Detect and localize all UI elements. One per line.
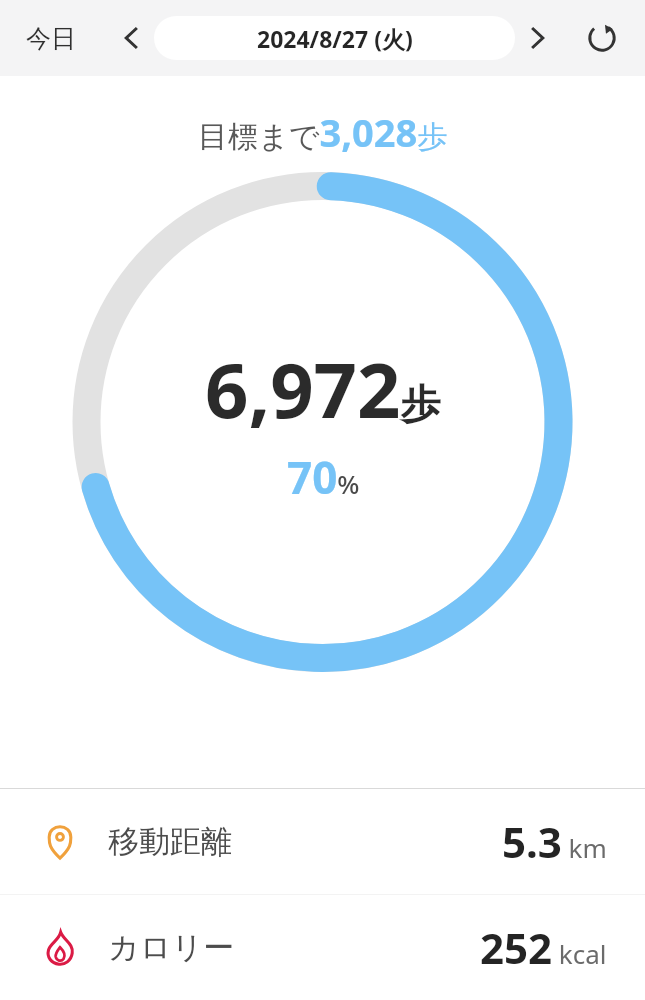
staticText: 目標まで3,028歩 bbox=[198, 106, 448, 158]
button[interactable]: 2024/8/27 (火) bbox=[154, 16, 515, 60]
staticText: 70% bbox=[287, 447, 360, 507]
staticText: カロリー bbox=[108, 928, 235, 967]
button[interactable]: カロリー bbox=[0, 895, 645, 1000]
staticText: 今日 bbox=[26, 23, 76, 54]
staticText: 252 kcal bbox=[480, 919, 607, 976]
button[interactable]: Next day bbox=[515, 15, 561, 61]
staticText: 5.3 km bbox=[502, 813, 607, 870]
staticText: 2024/8/27 (火) bbox=[257, 23, 413, 54]
button[interactable]: 今日 bbox=[18, 15, 84, 62]
button[interactable]: 移動距離 bbox=[0, 789, 645, 894]
staticText: 6,972歩 bbox=[205, 337, 441, 441]
button[interactable]: Previous day bbox=[108, 15, 154, 61]
button[interactable]: Refresh bbox=[577, 13, 627, 63]
staticText: 移動距離 bbox=[108, 822, 232, 861]
